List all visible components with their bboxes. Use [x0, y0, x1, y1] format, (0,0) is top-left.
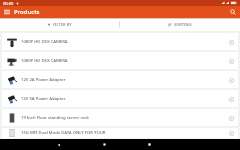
staticText: 00:00	[3, 1, 14, 6]
button[interactable]: More info about 12V 2A Power Adapter	[226, 75, 236, 85]
staticText: 12V 5A Power Adapter	[21, 96, 226, 102]
button[interactable]: SORTING	[120, 18, 240, 31]
button[interactable]: More info about 15G MFI Dual Mode DATA O…	[226, 128, 236, 138]
button[interactable]: Home	[96, 139, 112, 150]
button[interactable]: More info about 1080P HD DEX CAMERA	[226, 56, 236, 66]
button[interactable]: 12V 5A Power Adapter	[2, 90, 238, 107]
button[interactable]: 12V 2A Power Adapter	[2, 71, 238, 88]
staticText: 1080P HD DEX CAMERA	[21, 39, 226, 45]
button[interactable]: More info about 12V 5A Power Adapter	[226, 94, 236, 104]
staticText: FILTER BY	[53, 22, 72, 27]
staticText: Products	[14, 8, 40, 16]
button[interactable]: Back	[51, 139, 67, 150]
staticText: SORTING	[174, 22, 192, 27]
staticText: 15G MFI Dual Mode DATA ONLY FOR YOUR	[21, 130, 226, 136]
button[interactable]: Open navigation menu	[0, 6, 14, 18]
button[interactable]: Search	[226, 6, 240, 18]
button[interactable]: More info about 19 Inch Floor standing s…	[226, 113, 236, 123]
button[interactable]: More info about 1080P HD DEX CAMERA	[226, 37, 236, 47]
staticText: 1080P HD DEX CAMERA	[21, 58, 226, 64]
button[interactable]: 19 Inch Floor standing server rack	[2, 109, 238, 126]
button[interactable]: 1080P HD DEX CAMERA	[2, 33, 238, 50]
staticText: 12V 2A Power Adapter	[21, 77, 226, 83]
button[interactable]: Recent apps	[141, 139, 157, 150]
staticText: 19 Inch Floor standing server rack	[21, 115, 226, 121]
button[interactable]: FILTER BY	[0, 18, 119, 31]
button[interactable]: 1080P HD DEX CAMERA	[2, 52, 238, 69]
button[interactable]: 15G MFI Dual Mode DATA ONLY FOR YOUR	[2, 128, 238, 138]
